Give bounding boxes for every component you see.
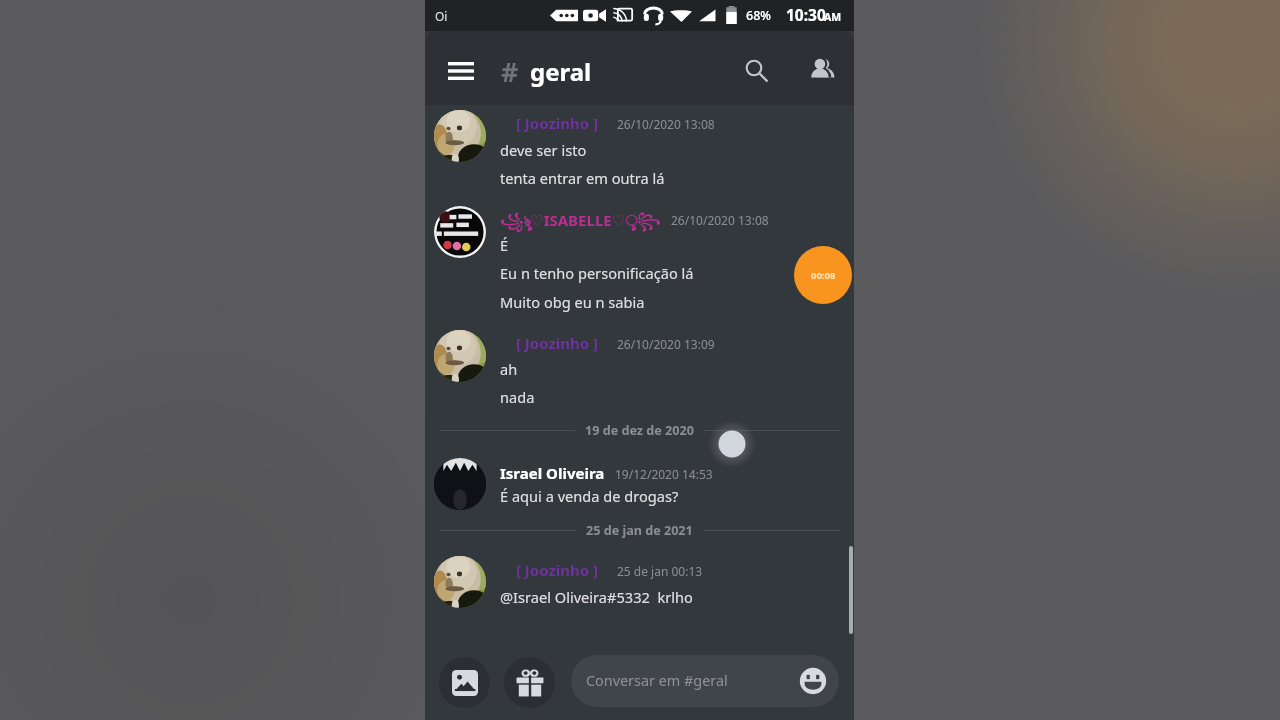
staticText: 10:30 [786, 4, 826, 25]
button[interactable]: Members [802, 50, 842, 90]
staticText: geral [530, 55, 592, 88]
staticText: # [501, 53, 519, 90]
staticText: deve ser isto [500, 140, 587, 160]
staticText: AM [824, 10, 842, 24]
staticText: Oi [435, 8, 448, 24]
staticText: nada [500, 387, 535, 407]
button[interactable]: Conversar em #geral [571, 655, 839, 707]
button[interactable]: Israel Oliveira [500, 463, 605, 483]
staticText: tenta entrar em outra lá [500, 168, 665, 188]
button[interactable]: Send a gift [504, 657, 555, 708]
staticText: 26/10/2020 13:08 [671, 212, 769, 228]
button[interactable]: Avatar [434, 110, 486, 162]
staticText: Eu n tenho personificação lá [500, 263, 694, 283]
button[interactable]: Avatar [434, 330, 486, 382]
button[interactable]: Open menu [441, 51, 481, 91]
staticText: 26/10/2020 13:08 [617, 116, 715, 132]
button[interactable]: Attach image [439, 657, 490, 708]
button[interactable]: Recording timer [794, 246, 852, 304]
button[interactable]: ꧁ৡ♡ISABELLE♡ৢ꧂ [500, 209, 661, 240]
staticText: 25 de jan 00:13 [617, 563, 703, 579]
staticText: Muito obg eu n sabia [500, 292, 645, 312]
staticText: É [500, 235, 509, 255]
staticText: 19 de dez de 2020 [585, 422, 694, 439]
staticText: 68% [746, 7, 771, 24]
staticText: @Israel Oliveira#5332 krlho [500, 587, 693, 607]
staticText: Conversar em #geral [586, 671, 728, 691]
staticText: 00:08 [811, 269, 836, 282]
button[interactable]: Avatar [434, 458, 486, 510]
button[interactable]: Avatar [434, 206, 486, 258]
button[interactable]: [ Joozinho ] [516, 113, 599, 133]
staticText: ah [500, 359, 518, 379]
staticText: 19/12/2020 14:53 [615, 466, 713, 482]
staticText: 26/10/2020 13:09 [617, 336, 715, 352]
button[interactable]: [ Joozinho ] [516, 333, 599, 353]
button[interactable]: [ Joozinho ] [516, 560, 599, 580]
staticText: 25 de jan de 2021 [586, 522, 693, 539]
button[interactable]: Avatar [434, 556, 486, 608]
button[interactable]: Search [736, 50, 776, 90]
staticText: É aqui a venda de drogas? [500, 486, 679, 506]
